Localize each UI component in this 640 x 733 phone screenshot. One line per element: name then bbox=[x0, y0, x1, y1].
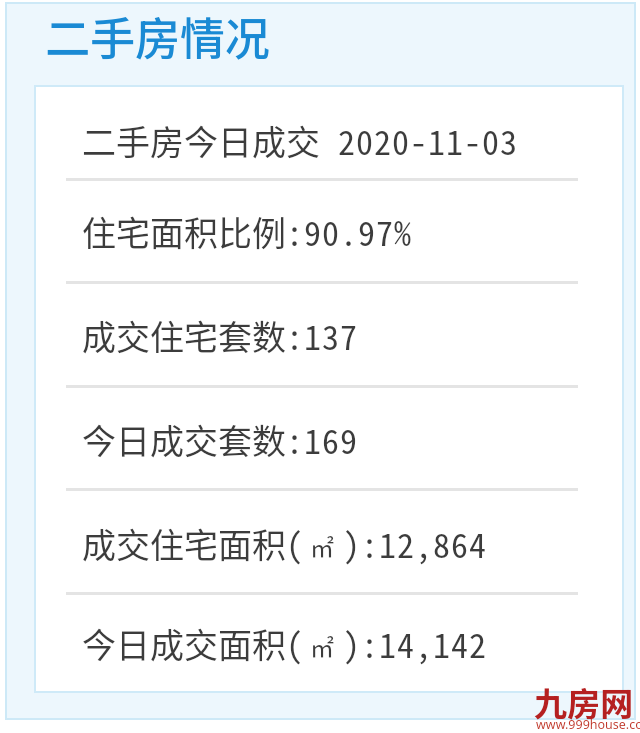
staticText: 今日成交套数:169 bbox=[82, 415, 358, 464]
staticText: 成交住宅套数:137 bbox=[82, 311, 358, 360]
button[interactable] bbox=[34, 389, 624, 475]
staticText: 住宅面积比例:90.97% bbox=[82, 207, 412, 256]
staticText: 九房网 bbox=[534, 678, 633, 726]
staticText: 二手房今日成交 2020-11-03 bbox=[82, 116, 518, 165]
staticText: 二手房情况 bbox=[45, 3, 271, 68]
button[interactable] bbox=[34, 493, 624, 579]
button[interactable] bbox=[34, 593, 624, 679]
button[interactable] bbox=[34, 181, 624, 267]
button[interactable] bbox=[34, 90, 624, 176]
staticText: 成交住宅面积(㎡):12,864 bbox=[82, 519, 487, 568]
staticText: www.999house.com bbox=[536, 716, 640, 733]
staticText: 今日成交面积(㎡):14,142 bbox=[82, 619, 487, 668]
button[interactable] bbox=[34, 285, 624, 371]
